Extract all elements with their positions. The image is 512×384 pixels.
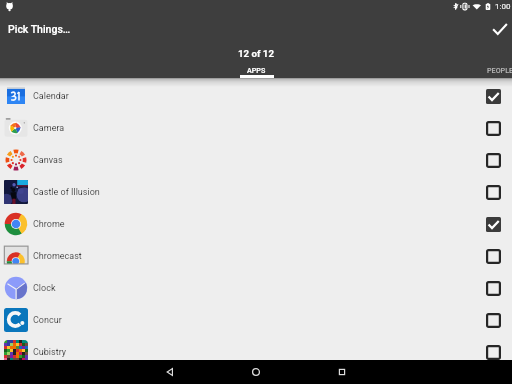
staticText: Castle of Illusion (33, 187, 100, 198)
staticText: APPS (247, 66, 266, 74)
staticText: Calendar (33, 91, 69, 102)
staticText: Chrome (33, 219, 65, 230)
button[interactable]: Cubistry (0, 336, 512, 368)
staticText: Camera (33, 123, 65, 134)
staticText: 1:00 (495, 2, 511, 11)
button[interactable]: Done (484, 13, 512, 44)
staticText: Canvas (33, 155, 63, 166)
button[interactable]: APPS (216, 62, 296, 78)
staticText: 12 of 12 (238, 48, 274, 59)
button[interactable]: Not selected (482, 181, 504, 203)
button[interactable]: Selected (482, 213, 504, 235)
button[interactable]: Not selected (482, 309, 504, 331)
button[interactable]: Canvas (0, 144, 512, 176)
button[interactable]: Camera (0, 112, 512, 144)
button[interactable]: Not selected (482, 245, 504, 267)
button[interactable]: Chrome (0, 208, 512, 240)
button[interactable]: Recents (318, 360, 366, 384)
button[interactable]: Calendar (0, 80, 512, 112)
button[interactable]: Clock (0, 272, 512, 304)
staticText: Clock (33, 283, 56, 294)
button[interactable]: Selected (482, 85, 504, 107)
button[interactable]: Not selected (482, 117, 504, 139)
staticText: Concur (33, 315, 62, 326)
button[interactable]: Concur (0, 304, 512, 336)
staticText: Cubistry (33, 347, 67, 358)
staticText: PEOPLE (487, 66, 512, 74)
button[interactable]: Chromecast (0, 240, 512, 272)
button[interactable]: Not selected (482, 149, 504, 171)
button[interactable]: Not selected (482, 341, 504, 363)
staticText: Pick Things… (8, 23, 71, 35)
button[interactable]: PEOPLE (487, 62, 512, 78)
button[interactable]: Not selected (482, 277, 504, 299)
staticText: Chromecast (33, 251, 82, 262)
button[interactable]: Castle of Illusion (0, 176, 512, 208)
button[interactable]: Back (146, 360, 194, 384)
button[interactable]: Home (232, 360, 280, 384)
